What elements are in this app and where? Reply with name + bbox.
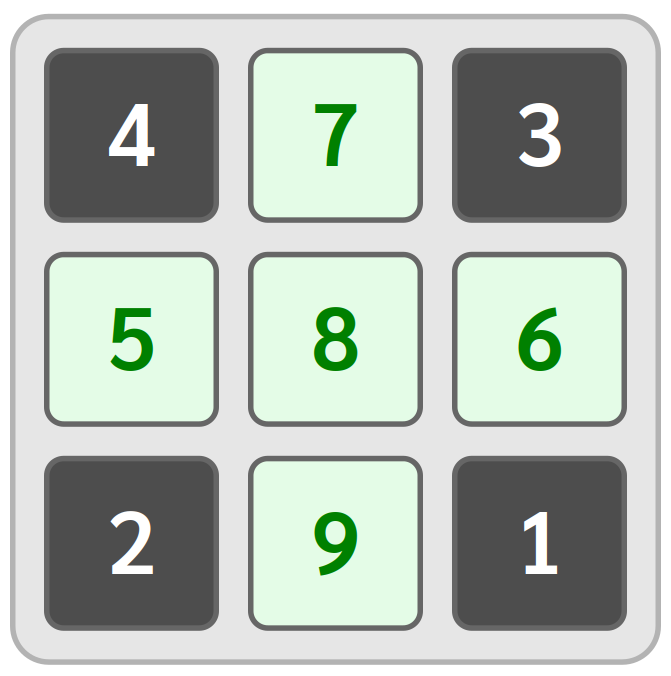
staticText: 4 xyxy=(107,72,156,186)
button[interactable]: 8 xyxy=(248,252,423,427)
button[interactable]: 9 xyxy=(248,456,423,631)
staticText: 7 xyxy=(311,72,360,186)
button[interactable]: 6 xyxy=(452,252,627,427)
button[interactable]: 2 xyxy=(44,456,219,631)
staticText: 2 xyxy=(107,480,156,594)
staticText: 8 xyxy=(311,276,360,390)
button[interactable]: 4 xyxy=(44,48,219,223)
staticText: 1 xyxy=(515,480,564,594)
staticText: 9 xyxy=(311,480,360,594)
button[interactable]: 5 xyxy=(44,252,219,427)
button[interactable]: 7 xyxy=(248,48,423,223)
button[interactable]: 3 xyxy=(452,48,627,223)
staticText: 6 xyxy=(515,276,564,390)
staticText: 5 xyxy=(107,276,156,390)
button[interactable]: 1 xyxy=(452,456,627,631)
staticText: 3 xyxy=(515,72,564,186)
